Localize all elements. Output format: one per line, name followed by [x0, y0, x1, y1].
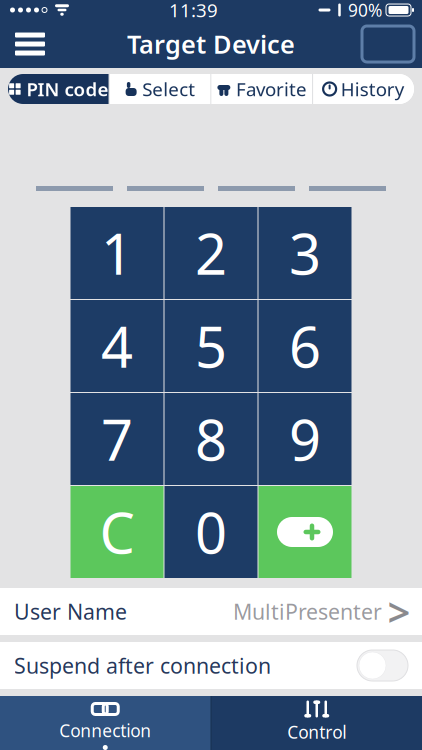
button[interactable]: Suspend after connection: [0, 642, 422, 689]
button[interactable]: Display: [354, 20, 422, 68]
button[interactable]: Delete: [258, 486, 351, 578]
button[interactable]: C: [70, 486, 163, 578]
staticText: User Name: [14, 597, 127, 626]
staticText: 8: [195, 402, 227, 476]
staticText: Suspend after connection: [14, 651, 271, 680]
button[interactable]: 9: [258, 393, 351, 485]
staticText: 7: [101, 402, 133, 476]
staticText: Target Device: [127, 27, 295, 61]
staticText: 3: [289, 216, 321, 290]
button[interactable]: Connection: [0, 696, 210, 750]
button[interactable]: 6: [258, 300, 351, 392]
button[interactable]: 7: [70, 393, 163, 485]
staticText: 4: [101, 309, 133, 383]
button[interactable]: Select: [110, 74, 211, 104]
staticText: Control: [287, 720, 346, 743]
staticText: Connection: [59, 719, 151, 742]
staticText: Favorite: [236, 77, 307, 101]
button[interactable]: 2: [164, 207, 257, 299]
button[interactable]: Favorite: [211, 74, 312, 104]
staticText: C: [99, 495, 134, 569]
staticText: 9: [289, 402, 321, 476]
staticText: 90%: [348, 0, 382, 21]
staticText: 5: [195, 309, 227, 383]
button[interactable]: 3: [258, 207, 351, 299]
button[interactable]: Menu: [0, 20, 60, 68]
button[interactable]: 5: [164, 300, 257, 392]
button[interactable]: Control: [211, 696, 422, 750]
staticText: 6: [289, 309, 321, 383]
staticText: 1: [101, 216, 133, 290]
button[interactable]: 0: [164, 486, 257, 578]
staticText: History: [341, 77, 405, 101]
button[interactable]: 8: [164, 393, 257, 485]
staticText: MultiPresenter: [233, 597, 382, 626]
button[interactable]: History: [313, 74, 414, 104]
staticText: >: [387, 585, 410, 638]
staticText: 2: [195, 216, 227, 290]
staticText: 0: [195, 495, 227, 569]
button[interactable]: PIN code: [8, 74, 109, 104]
staticText: 11:39: [169, 0, 218, 22]
button[interactable]: 4: [70, 300, 163, 392]
staticText: PIN code: [26, 77, 108, 101]
button[interactable]: 1: [70, 207, 163, 299]
staticText: Select: [142, 77, 195, 101]
button[interactable]: User Name: [0, 588, 422, 635]
